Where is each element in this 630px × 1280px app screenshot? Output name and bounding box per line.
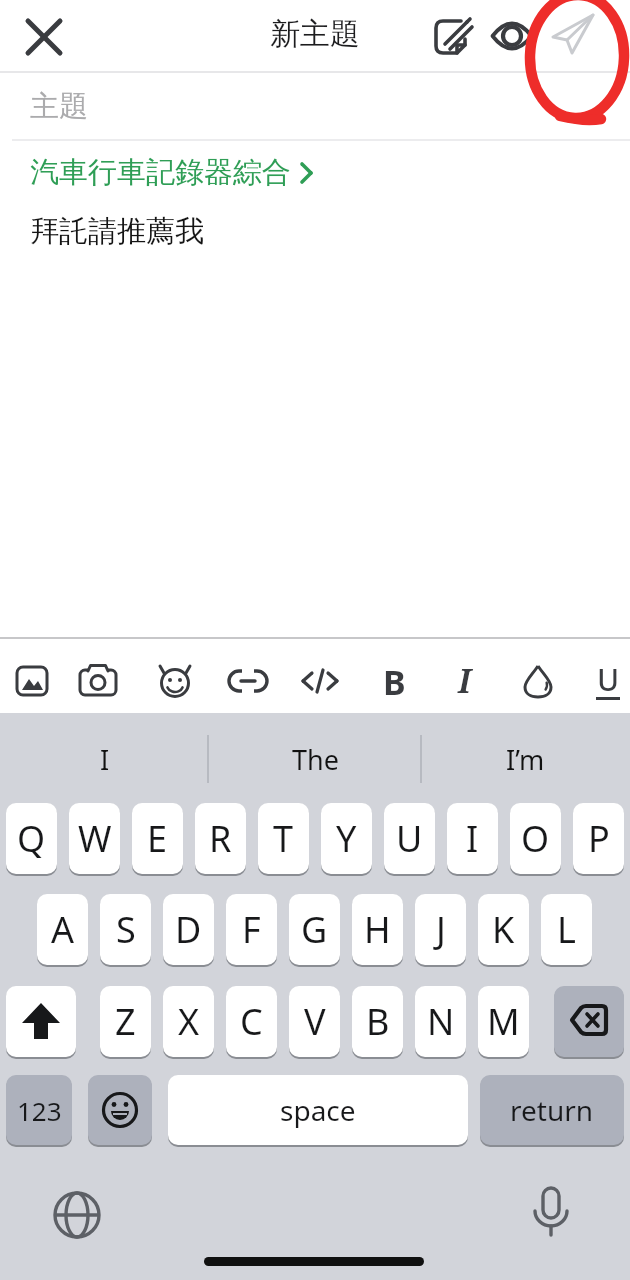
staticText: T [273,814,294,863]
staticText: K [492,905,515,954]
button[interactable] [6,986,76,1057]
button[interactable]: 汽車行車記錄器綜合 [30,154,315,191]
button[interactable]: G [289,894,340,965]
button[interactable]: 123 [6,1075,72,1145]
button[interactable] [554,986,624,1057]
staticText: B [366,997,390,1046]
staticText: P [588,814,610,863]
staticText: return [510,1091,594,1129]
button[interactable]: L [541,894,592,965]
staticText: F [242,905,261,954]
staticText: 新主題 [270,15,360,53]
button[interactable]: N [415,986,466,1057]
staticText: B [383,659,406,703]
staticText: U [396,814,423,863]
staticText: C [240,997,263,1046]
staticText: 123 [17,1093,62,1128]
button[interactable]: I [442,659,486,703]
staticText: U [597,659,620,700]
staticText: 拜託請推薦我 [30,213,204,250]
staticText: The [292,741,339,778]
button[interactable]: return [480,1075,624,1145]
staticText: E [147,814,168,863]
staticText: I [466,814,479,863]
staticText: 主題 [30,88,88,125]
button[interactable]: B [372,659,416,703]
button[interactable]: M [478,986,529,1057]
staticText: L [557,905,576,954]
button[interactable]: space [168,1075,468,1145]
staticText: X [178,997,200,1046]
button[interactable] [153,659,197,703]
button[interactable]: R [195,803,246,874]
button[interactable]: D [163,894,214,965]
staticText: I [100,741,110,778]
button[interactable]: Y [321,803,372,874]
button[interactable] [76,659,120,703]
button[interactable]: S [100,894,151,965]
button[interactable]: U [586,659,630,703]
staticText: space [280,1091,356,1129]
button[interactable]: I’m [420,737,630,781]
staticText: G [301,905,328,954]
button[interactable] [548,9,600,61]
staticText: O [521,814,550,863]
button[interactable]: B [352,986,403,1057]
button[interactable]: J [415,894,466,965]
staticText: I’m [506,741,545,778]
staticText: Z [115,997,136,1046]
button[interactable] [226,659,270,703]
button[interactable]: The [210,737,420,781]
button[interactable] [50,1188,104,1242]
button[interactable]: F [226,894,277,965]
staticText: Y [336,814,357,863]
staticText: J [436,905,446,954]
button[interactable] [488,12,536,60]
button[interactable]: V [289,986,340,1057]
staticText: Q [17,814,46,863]
staticText: S [116,905,136,954]
button[interactable] [18,11,70,63]
button[interactable]: I [447,803,498,874]
button[interactable]: W [69,803,120,874]
button[interactable]: X [163,986,214,1057]
staticText: H [364,905,391,954]
staticText: M [487,997,520,1046]
button[interactable] [10,659,54,703]
staticText: D [175,905,202,954]
button[interactable]: C [226,986,277,1057]
staticText: V [304,997,326,1046]
button[interactable]: T [258,803,309,874]
button[interactable]: E [132,803,183,874]
button[interactable]: P [573,803,624,874]
button[interactable] [88,1075,152,1145]
staticText: N [427,997,455,1046]
staticText: I [458,659,471,703]
button[interactable] [298,659,342,703]
button[interactable]: Q [6,803,57,874]
staticText: 汽車行車記錄器綜合 [30,154,291,191]
button[interactable] [522,1183,580,1241]
button[interactable]: K [478,894,529,965]
button[interactable] [516,659,560,703]
staticText: A [51,905,75,954]
button[interactable]: U [384,803,435,874]
button[interactable]: I [0,737,210,781]
button[interactable]: Z [100,986,151,1057]
staticText: R [209,814,232,863]
button[interactable]: H [352,894,403,965]
button[interactable]: A [37,894,88,965]
button[interactable] [428,11,478,61]
button[interactable]: O [510,803,561,874]
staticText: W [78,814,112,863]
